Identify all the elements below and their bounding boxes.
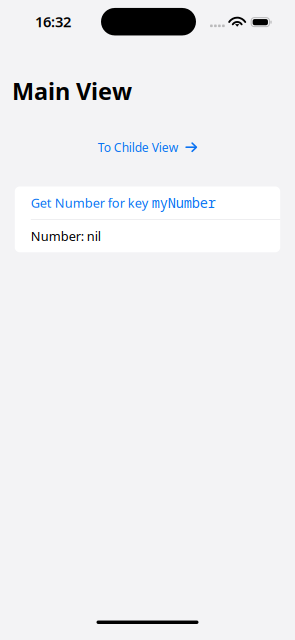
staticText: Number: nil: [31, 227, 101, 245]
staticText: Get Number for key: [31, 194, 152, 211]
staticText: myNumber: [152, 193, 216, 212]
staticText: To Childe View: [98, 139, 179, 155]
button[interactable]: To Childe View: [90, 134, 205, 160]
button[interactable]: Get Number for key: [15, 186, 280, 219]
staticText: Main View: [12, 75, 132, 107]
staticText: 16:32: [35, 11, 71, 31]
